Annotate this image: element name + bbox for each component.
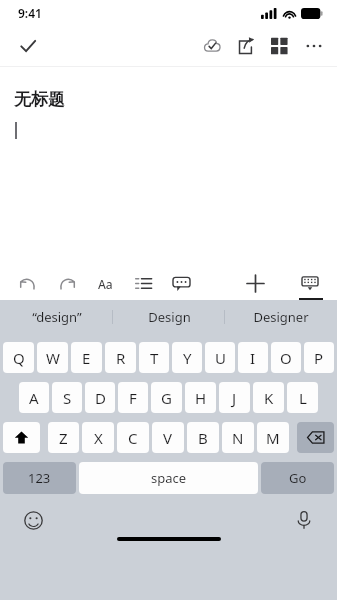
staticText: U: [215, 348, 226, 368]
button[interactable]: L: [287, 382, 318, 413]
button[interactable]: K: [253, 382, 284, 413]
staticText: Design: [148, 308, 191, 326]
staticText: B: [198, 428, 208, 448]
button[interactable]: G: [151, 382, 182, 413]
staticText: Aa: [98, 276, 113, 292]
button[interactable]: space: [79, 462, 258, 494]
button[interactable]: List: [130, 270, 156, 296]
button[interactable]: Done: [8, 26, 48, 66]
staticText: F: [129, 388, 137, 408]
staticText: L: [299, 388, 307, 408]
button[interactable]: O: [271, 342, 301, 373]
staticText: space: [151, 469, 187, 487]
staticText: T: [150, 348, 159, 368]
staticText: 9:41: [18, 5, 42, 21]
staticText: P: [314, 348, 324, 368]
button[interactable]: S: [52, 382, 82, 413]
staticText: E: [82, 348, 91, 368]
staticText: C: [128, 428, 138, 448]
button[interactable]: X: [82, 422, 114, 453]
button[interactable]: T: [139, 342, 169, 373]
button[interactable]: Cloud sync: [195, 29, 229, 63]
staticText: Go: [289, 469, 307, 487]
button[interactable]: View options: [263, 29, 297, 63]
button[interactable]: “design”: [0, 300, 113, 333]
button[interactable]: R: [105, 342, 136, 373]
staticText: A: [29, 388, 39, 408]
button[interactable]: Comment: [168, 270, 194, 296]
button[interactable]: More: [297, 29, 331, 63]
staticText: N: [232, 428, 244, 448]
staticText: K: [264, 388, 274, 408]
button[interactable]: 123: [3, 462, 76, 494]
button[interactable]: Insert: [240, 268, 270, 298]
button[interactable]: Y: [172, 342, 202, 373]
staticText: O: [280, 348, 292, 368]
button[interactable]: B: [187, 422, 219, 453]
staticText: V: [163, 428, 173, 448]
staticText: S: [63, 388, 72, 408]
button[interactable]: Emoji: [20, 507, 46, 533]
button[interactable]: Shift: [3, 422, 40, 453]
button[interactable]: Designer: [225, 300, 337, 333]
button[interactable]: Undo: [14, 270, 40, 296]
button[interactable]: I: [238, 342, 268, 373]
button[interactable]: Dictation: [291, 507, 317, 533]
button[interactable]: F: [118, 382, 148, 413]
button[interactable]: Z: [48, 422, 79, 453]
button[interactable]: M: [257, 422, 289, 453]
staticText: M: [266, 428, 280, 448]
staticText: X: [94, 428, 103, 448]
staticText: W: [46, 348, 60, 368]
button[interactable]: Text format: [92, 270, 118, 296]
button[interactable]: J: [219, 382, 250, 413]
button[interactable]: W: [37, 342, 68, 373]
staticText: I: [250, 348, 256, 368]
staticText: H: [195, 388, 207, 408]
button[interactable]: Design: [113, 300, 225, 333]
button[interactable]: N: [222, 422, 254, 453]
button[interactable]: E: [71, 342, 102, 373]
staticText: Z: [59, 428, 68, 448]
button[interactable]: Q: [3, 342, 34, 373]
staticText: Q: [13, 348, 25, 368]
button[interactable]: U: [205, 342, 235, 373]
staticText: 无标题: [14, 89, 65, 110]
button[interactable]: C: [117, 422, 149, 453]
staticText: “design”: [32, 308, 82, 326]
button[interactable]: Redo: [54, 270, 80, 296]
button[interactable]: P: [304, 342, 334, 373]
staticText: G: [161, 388, 172, 408]
button[interactable]: H: [185, 382, 216, 413]
button[interactable]: V: [152, 422, 184, 453]
button[interactable]: A: [19, 382, 49, 413]
staticText: Designer: [253, 308, 309, 326]
staticText: 123: [28, 469, 51, 487]
staticText: R: [116, 348, 126, 368]
button[interactable]: Go: [261, 462, 334, 494]
button[interactable]: Share: [229, 29, 263, 63]
button[interactable]: D: [85, 382, 115, 413]
button[interactable]: Delete: [297, 422, 334, 453]
staticText: D: [95, 388, 106, 408]
staticText: J: [232, 388, 237, 408]
button[interactable]: Hide keyboard: [295, 268, 325, 298]
staticText: Y: [183, 348, 192, 368]
